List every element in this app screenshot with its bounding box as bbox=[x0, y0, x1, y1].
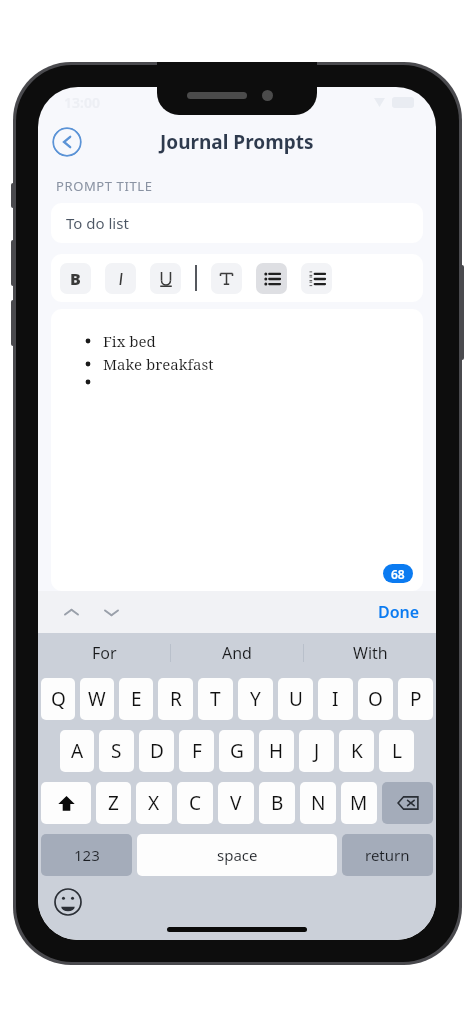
button[interactable]: Text style bbox=[211, 263, 242, 294]
button[interactable]: F bbox=[179, 730, 214, 772]
button[interactable]: Italic bbox=[105, 263, 136, 294]
button[interactable]: L bbox=[379, 730, 414, 772]
button[interactable]: D bbox=[139, 730, 174, 772]
button[interactable]: P bbox=[398, 678, 433, 720]
staticText: H bbox=[269, 738, 284, 764]
staticText: O bbox=[368, 686, 383, 712]
button[interactable]: W bbox=[80, 678, 114, 720]
staticText: F bbox=[192, 738, 202, 764]
button[interactable]: H bbox=[259, 730, 294, 772]
staticText: A bbox=[71, 738, 84, 764]
button[interactable]: S bbox=[99, 730, 134, 772]
staticText: I bbox=[332, 686, 339, 712]
staticText: Make breakfast bbox=[103, 354, 214, 374]
staticText: To do list bbox=[66, 213, 129, 233]
staticText: S bbox=[111, 738, 122, 764]
button[interactable]: X bbox=[136, 782, 172, 824]
staticText: Fix bed bbox=[103, 331, 156, 351]
button[interactable]: J bbox=[299, 730, 334, 772]
button[interactable]: O bbox=[358, 678, 393, 720]
button[interactable]: Back bbox=[52, 127, 82, 157]
staticText: B bbox=[70, 268, 81, 290]
button[interactable]: V bbox=[218, 782, 254, 824]
staticText: space bbox=[217, 845, 258, 865]
staticText: For bbox=[92, 642, 117, 664]
button[interactable]: Y bbox=[238, 678, 273, 720]
staticText: J bbox=[314, 738, 320, 764]
staticText: U bbox=[289, 686, 303, 712]
button[interactable]: Done bbox=[378, 601, 420, 623]
staticText: X bbox=[148, 790, 160, 816]
staticText: L bbox=[392, 738, 402, 764]
staticText: Y bbox=[250, 686, 261, 712]
button[interactable]: Backspace bbox=[382, 782, 433, 824]
button[interactable]: Fix bed bbox=[51, 309, 423, 591]
staticText: P bbox=[410, 686, 422, 712]
button[interactable]: M bbox=[341, 782, 377, 824]
button[interactable]: And bbox=[171, 633, 303, 673]
staticText: Z bbox=[108, 790, 119, 816]
button[interactable]: Numbered list bbox=[301, 263, 332, 294]
button[interactable]: Bold bbox=[60, 263, 91, 294]
staticText: K bbox=[351, 738, 363, 764]
button[interactable]: Next field bbox=[96, 597, 126, 627]
button[interactable]: A bbox=[60, 730, 94, 772]
button[interactable]: I bbox=[318, 678, 353, 720]
staticText: return bbox=[365, 845, 410, 865]
button[interactable]: return bbox=[342, 834, 433, 876]
staticText: 13:00 bbox=[64, 93, 100, 112]
button[interactable]: B bbox=[259, 782, 295, 824]
staticText: W bbox=[88, 686, 106, 712]
staticText: M bbox=[350, 790, 368, 816]
staticText: Journal Prompts bbox=[160, 129, 314, 155]
staticText: D bbox=[150, 738, 164, 764]
staticText: G bbox=[230, 738, 244, 764]
button[interactable]: R bbox=[158, 678, 193, 720]
staticText: Done bbox=[378, 601, 420, 623]
staticText: PROMPT TITLE bbox=[56, 177, 153, 195]
button[interactable]: N bbox=[300, 782, 336, 824]
button[interactable]: Previous field bbox=[56, 597, 86, 627]
button[interactable]: Bullet list bbox=[256, 263, 287, 294]
staticText: B bbox=[271, 790, 284, 816]
button[interactable]: Shift bbox=[41, 782, 91, 824]
button[interactable]: T bbox=[198, 678, 233, 720]
button[interactable]: space bbox=[137, 834, 337, 876]
staticText: With bbox=[353, 642, 388, 664]
button[interactable]: To do list bbox=[51, 203, 423, 243]
staticText: E bbox=[131, 686, 142, 712]
button[interactable]: For bbox=[38, 633, 170, 673]
staticText: 68 bbox=[391, 566, 405, 582]
staticText: R bbox=[170, 686, 182, 712]
button[interactable]: K bbox=[339, 730, 374, 772]
staticText: C bbox=[189, 790, 202, 816]
staticText: T bbox=[210, 686, 221, 712]
button[interactable]: G bbox=[219, 730, 254, 772]
button[interactable]: U bbox=[278, 678, 313, 720]
staticText: N bbox=[311, 790, 326, 816]
staticText: 123 bbox=[74, 845, 100, 865]
button[interactable]: 123 bbox=[41, 834, 132, 876]
staticText: Q bbox=[51, 686, 66, 712]
button[interactable]: Z bbox=[96, 782, 131, 824]
button[interactable]: Emoji bbox=[54, 888, 82, 916]
button[interactable]: C bbox=[177, 782, 213, 824]
button[interactable]: E bbox=[119, 678, 153, 720]
staticText: And bbox=[222, 642, 252, 664]
button[interactable]: Underline bbox=[150, 263, 181, 294]
button[interactable]: Q bbox=[41, 678, 75, 720]
button[interactable]: With bbox=[304, 633, 436, 673]
staticText: V bbox=[230, 790, 242, 816]
